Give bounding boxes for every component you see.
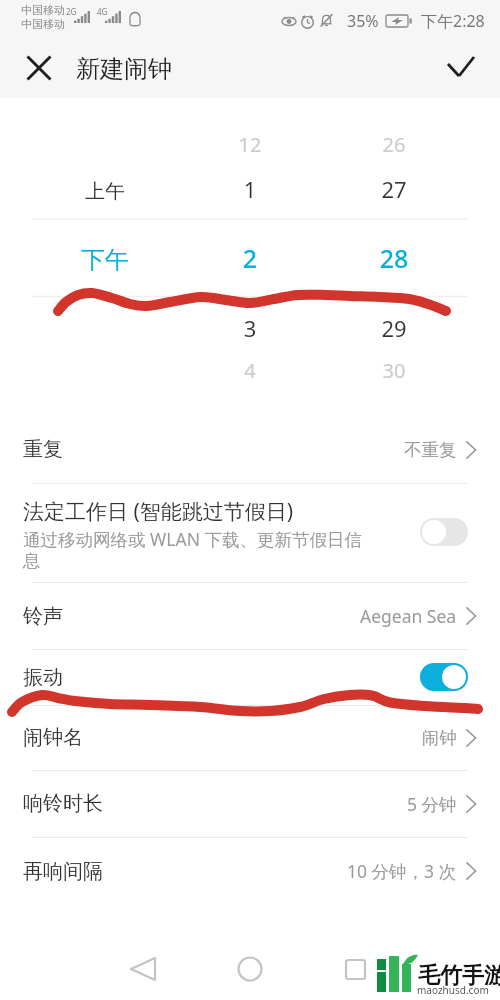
staticText: 不重复	[404, 439, 457, 461]
staticText: 法定工作日 (智能跳过节假日)	[23, 497, 294, 526]
button[interactable]: Toggle on	[420, 663, 468, 691]
staticText: Aegean Sea	[360, 604, 457, 628]
staticText: 下午2:28	[421, 10, 485, 32]
button[interactable]: Recents	[333, 947, 377, 991]
button[interactable]: Confirm	[439, 45, 483, 89]
staticText: 上午	[35, 179, 175, 204]
staticText: 2	[180, 241, 320, 275]
staticText: 再响间隔	[23, 859, 103, 884]
staticText: 10 分钟，3 次	[347, 859, 457, 883]
staticText: 1	[180, 174, 320, 204]
staticText: 铃声	[23, 604, 63, 629]
button[interactable]: 重复	[0, 416, 500, 483]
button[interactable]: Back	[121, 947, 165, 991]
staticText: 振动	[23, 665, 63, 690]
button[interactable]: Close	[17, 46, 61, 90]
staticText: 下午	[35, 245, 175, 275]
staticText: 2G	[66, 6, 77, 17]
staticText: maozhusd.com	[417, 983, 489, 997]
staticText: 35%	[347, 10, 379, 32]
button[interactable]: 法定工作日 (智能跳过节假日)	[0, 483, 500, 582]
staticText: 闹钟名	[23, 725, 83, 750]
button[interactable]: 响铃时长	[0, 770, 500, 837]
button[interactable]: 再响间隔	[0, 837, 500, 905]
staticText: 4G	[97, 6, 108, 17]
staticText: 29	[324, 313, 464, 343]
staticText: 中国移动	[21, 3, 65, 17]
staticText: 新建闹钟	[76, 54, 172, 84]
staticText: 12	[180, 131, 320, 158]
staticText: 26	[324, 131, 464, 158]
staticText: 闹钟	[422, 727, 457, 749]
staticText: 毛竹手游	[418, 962, 500, 990]
staticText: 响铃时长	[23, 791, 103, 816]
staticText: 中国移动	[21, 17, 65, 31]
staticText: 3	[180, 313, 320, 343]
button[interactable]: 铃声	[0, 582, 500, 650]
staticText: 30	[324, 357, 464, 384]
button[interactable]: 闹钟名	[0, 705, 500, 770]
button[interactable]: 振动	[0, 649, 500, 705]
staticText: 28	[324, 241, 464, 275]
button[interactable]: Home	[228, 947, 272, 991]
staticText: 重复	[23, 437, 63, 462]
staticText: 5 分钟	[407, 792, 457, 816]
staticText: 通过移动网络或 WLAN 下载、更新节假日信 息	[23, 527, 363, 573]
button[interactable]: Toggle off	[420, 518, 468, 546]
staticText: 27	[324, 174, 464, 204]
staticText: 4	[180, 357, 320, 384]
